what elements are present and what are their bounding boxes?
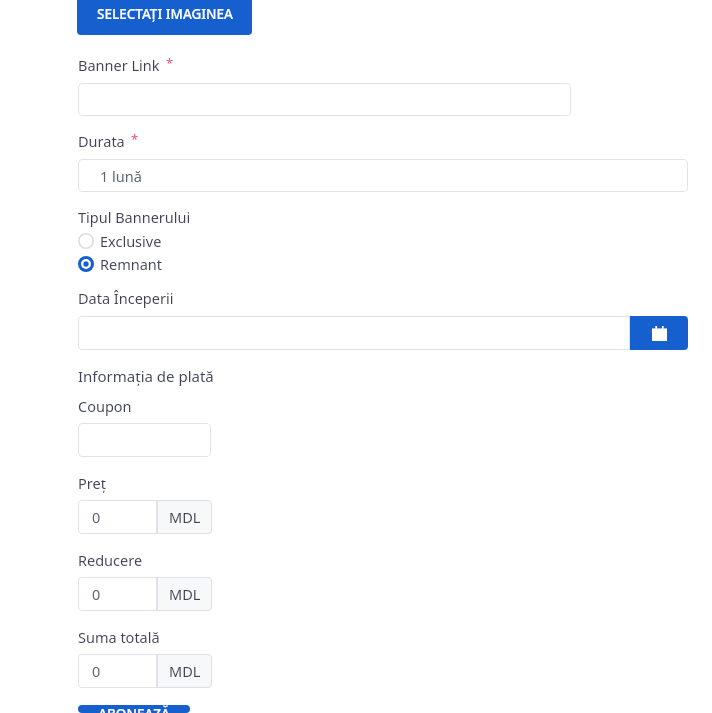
button[interactable]: 0 bbox=[78, 577, 157, 611]
button[interactable]: MDL bbox=[157, 577, 212, 611]
staticText: * bbox=[166, 54, 174, 72]
staticText: Informația de plată bbox=[78, 366, 214, 386]
button[interactable] bbox=[78, 83, 571, 116]
button[interactable] bbox=[78, 423, 211, 457]
button[interactable]: Open calendar bbox=[630, 316, 688, 350]
staticText: MDL bbox=[169, 584, 201, 604]
staticText: Durata bbox=[78, 131, 125, 151]
button[interactable]: 0 bbox=[78, 654, 157, 688]
staticText: Reducere bbox=[78, 550, 143, 570]
button[interactable]: SELECTAȚI IMAGINEA bbox=[77, 0, 252, 35]
button[interactable]: 0 bbox=[78, 500, 157, 534]
staticText: Tipul Bannerului bbox=[78, 207, 191, 227]
staticText: MDL bbox=[169, 661, 201, 681]
staticText: 0 bbox=[92, 584, 101, 604]
staticText: ABONEAZĂ bbox=[98, 705, 170, 713]
staticText: 0 bbox=[92, 661, 101, 681]
button[interactable] bbox=[78, 316, 630, 350]
staticText: Preț bbox=[78, 473, 106, 493]
staticText: MDL bbox=[169, 507, 201, 527]
button[interactable]: 1 lună bbox=[78, 159, 688, 192]
staticText: Coupon bbox=[78, 396, 132, 416]
staticText: 1 lună bbox=[100, 166, 142, 186]
staticText: Suma totală bbox=[78, 627, 160, 647]
staticText: Banner Link bbox=[78, 55, 160, 75]
staticText: SELECTAȚI IMAGINEA bbox=[97, 5, 233, 23]
button[interactable]: Exclusive bbox=[78, 230, 162, 251]
staticText: 0 bbox=[92, 507, 101, 527]
staticText: * bbox=[131, 130, 139, 148]
staticText: Exclusive bbox=[100, 231, 162, 251]
button[interactable]: MDL bbox=[157, 500, 212, 534]
button[interactable]: Remnant bbox=[78, 253, 163, 274]
button[interactable]: ABONEAZĂ bbox=[78, 705, 190, 713]
staticText: Remnant bbox=[100, 254, 163, 274]
button[interactable]: MDL bbox=[157, 654, 212, 688]
staticText: Data Începerii bbox=[78, 288, 174, 308]
